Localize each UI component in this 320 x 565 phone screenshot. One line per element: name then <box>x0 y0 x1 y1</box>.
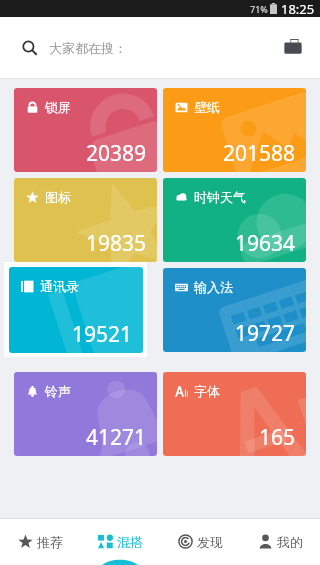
button[interactable]: 铃声 <box>14 372 157 456</box>
staticText: 我的 <box>277 534 303 550</box>
staticText: 19727 <box>235 319 296 348</box>
staticText: 字体 <box>194 383 220 399</box>
staticText: 锁屏 <box>45 99 71 115</box>
staticText: 混搭 <box>117 534 143 550</box>
staticText: 19634 <box>235 229 296 258</box>
button[interactable]: 图标 <box>14 178 157 262</box>
button[interactable]: 混搭 <box>80 518 160 565</box>
staticText: 165 <box>259 423 296 452</box>
staticText: 壁纸 <box>194 99 220 115</box>
staticText: 19835 <box>86 229 147 258</box>
staticText: 18:25 <box>281 0 315 17</box>
staticText: 大家都在搜： <box>49 40 127 56</box>
button[interactable]: 壁纸 <box>163 88 306 172</box>
staticText: 输入法 <box>194 279 233 295</box>
button[interactable]: 字体 <box>163 372 306 456</box>
button[interactable]: 锁屏 <box>14 88 157 172</box>
staticText: 推荐 <box>37 534 63 550</box>
staticText: 20389 <box>86 139 147 168</box>
button[interactable]: 通讯录 <box>9 267 143 353</box>
button[interactable]: Folder <box>272 27 314 69</box>
button[interactable]: 时钟天气 <box>163 178 306 262</box>
staticText: 201588 <box>223 139 296 168</box>
staticText: 图标 <box>45 189 71 205</box>
staticText: 发现 <box>197 534 223 550</box>
staticText: 通讯录 <box>40 278 79 294</box>
button[interactable]: 推荐 <box>0 518 80 565</box>
button[interactable]: 大家都在搜： <box>12 28 272 68</box>
button[interactable]: 我的 <box>240 518 320 565</box>
staticText: 19521 <box>72 320 133 349</box>
staticText: 铃声 <box>45 383 71 399</box>
staticText: 时钟天气 <box>194 189 246 205</box>
button[interactable]: 输入法 <box>163 268 306 352</box>
staticText: 71% <box>250 3 268 15</box>
staticText: 41271 <box>86 423 147 452</box>
button[interactable]: 发现 <box>160 518 240 565</box>
